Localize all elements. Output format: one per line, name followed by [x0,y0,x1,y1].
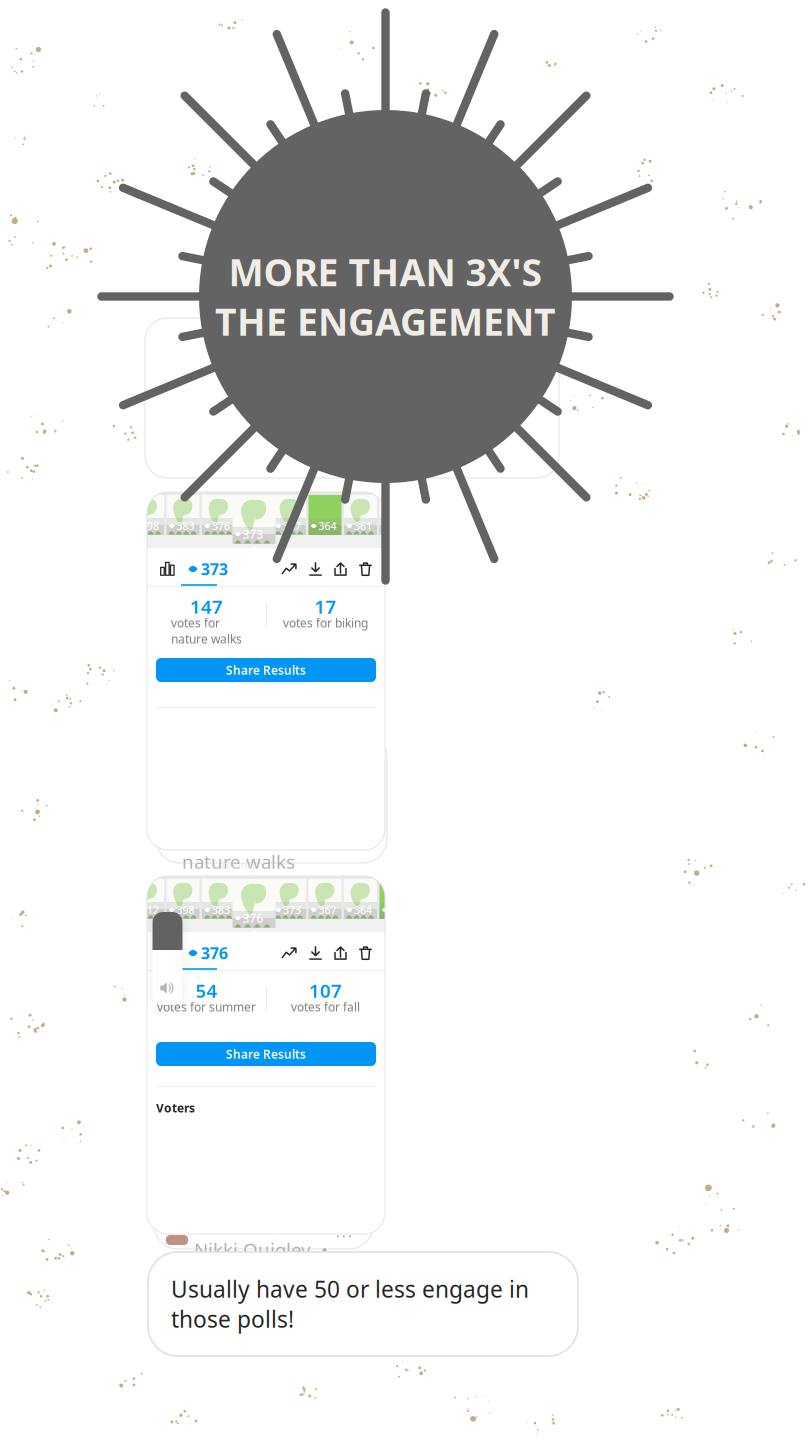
staticText: THE ENGAGEMENT [215,296,556,346]
staticText: 147 [190,594,223,619]
button[interactable]: Share Results [156,658,376,682]
staticText: Share Results [226,662,306,678]
staticText: 376 [212,519,230,533]
button[interactable]: Share Results [156,1042,376,1066]
button[interactable]: Trend [281,947,297,959]
staticText: votes for nature walks [171,615,242,647]
staticText: Nikki Quigley • [194,1237,328,1262]
staticText: 383 [212,903,230,917]
staticText: • • • [336,1230,352,1242]
button[interactable]: Share [334,946,347,960]
staticText: 398 [141,519,159,533]
button[interactable]: Share [334,562,347,576]
button[interactable]: Trend [281,563,297,575]
staticText: 17 [314,594,336,619]
staticText: 376 [201,942,228,964]
staticText: Share Results [226,1046,306,1062]
staticText: 412 [141,903,159,917]
staticText: votes for fall [291,999,360,1015]
staticText: votes for biking [283,615,368,631]
staticText: MORE THAN 3X'S [228,247,542,296]
staticText: Voters [156,1100,195,1116]
staticText: 364 [318,519,336,533]
staticText: 367 [283,519,301,533]
button[interactable]: Delete [359,562,372,576]
staticText: nature walks [182,849,295,874]
button[interactable]: Insights [160,562,175,576]
staticText: 364 [354,903,372,917]
staticText: 367 [318,903,336,917]
staticText: 376 [247,903,265,917]
staticText: 398 [176,903,194,917]
button[interactable]: Delete [359,946,372,960]
button[interactable]: Download [309,562,322,576]
staticText: 373 [283,903,301,917]
staticText: 107 [309,978,342,1003]
staticText: 376 [242,910,263,926]
staticText: biking [222,858,255,872]
staticText: 54 [195,978,217,1003]
staticText: 383 [176,519,194,533]
staticText: 373 [201,558,228,580]
staticText: Usually have 50 or less engage in those … [171,1274,529,1334]
staticText: 373 [242,526,263,542]
staticText: votes for summer [157,999,256,1015]
button[interactable]: Download [309,946,322,960]
button[interactable]: Insights [160,946,175,960]
staticText: 361 [354,519,372,533]
staticText: 373 [247,519,265,533]
